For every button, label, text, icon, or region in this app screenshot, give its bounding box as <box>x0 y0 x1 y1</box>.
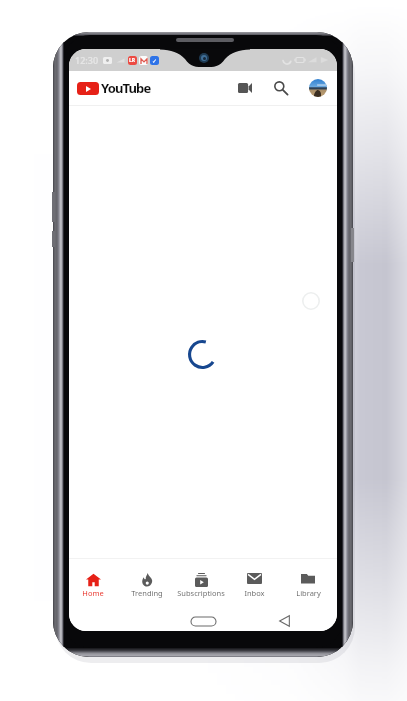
staticText: Library <box>296 588 321 598</box>
button[interactable]: Account <box>309 79 327 97</box>
staticText: Inbox <box>244 588 265 598</box>
button[interactable]: Home <box>191 617 216 626</box>
staticText: 12:30 <box>75 54 99 66</box>
staticText: Trending <box>131 588 163 598</box>
staticText: YouTube <box>101 79 151 97</box>
button[interactable]: Search <box>268 75 294 101</box>
staticText: Subscriptions <box>177 588 225 598</box>
staticText: Home <box>82 588 104 598</box>
button[interactable]: Create <box>232 75 258 101</box>
button[interactable]: Subscriptions <box>191 573 211 598</box>
staticText: ✓ <box>152 57 158 64</box>
button[interactable]: Home <box>83 573 103 598</box>
staticText: LR <box>129 57 136 64</box>
button[interactable]: Library <box>298 573 318 598</box>
button[interactable]: Back <box>278 615 290 627</box>
button[interactable]: YouTube <box>75 77 153 99</box>
button[interactable]: Trending <box>137 573 157 598</box>
button[interactable]: Inbox <box>244 573 264 598</box>
